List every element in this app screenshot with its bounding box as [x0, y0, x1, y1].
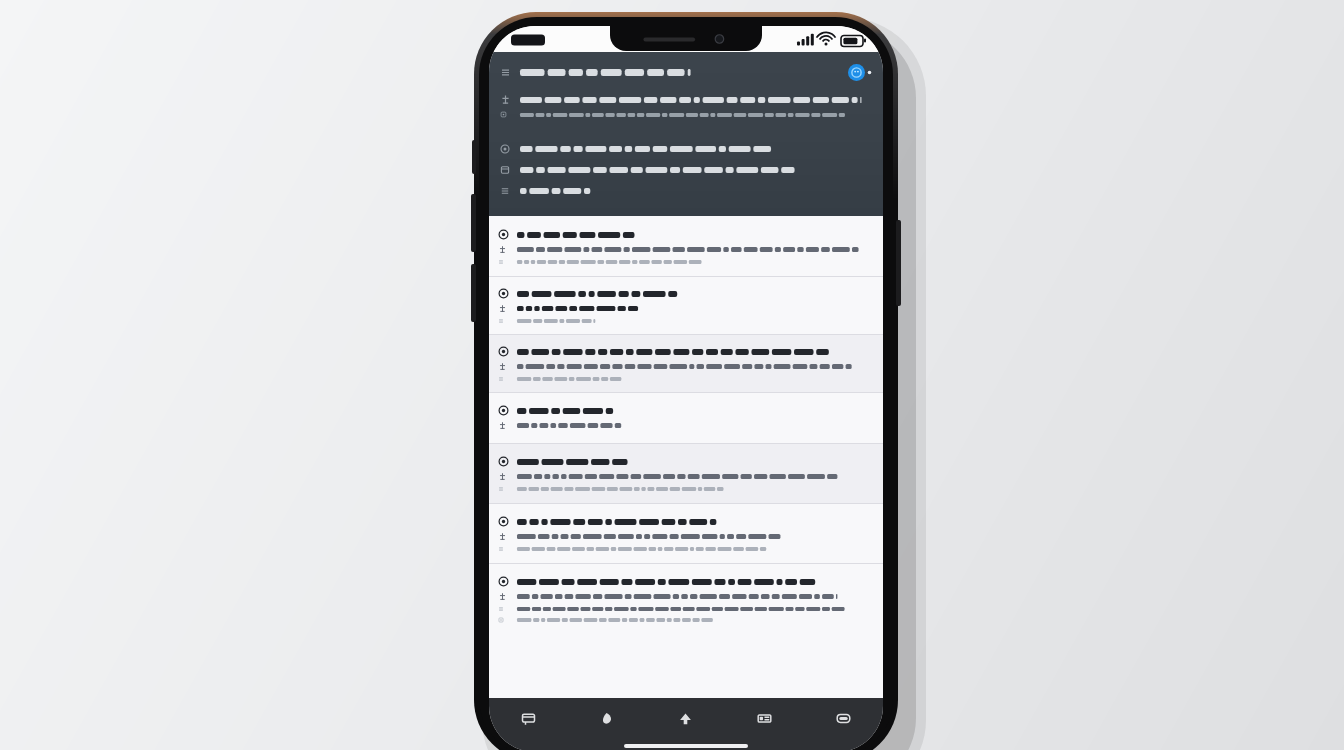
button[interactable] [500, 165, 872, 175]
button[interactable] [489, 277, 883, 334]
button[interactable]: Power [896, 220, 901, 306]
button[interactable]: Volume up [471, 194, 476, 252]
button[interactable]: Sent [646, 698, 725, 750]
button[interactable] [489, 216, 883, 276]
button[interactable] [489, 504, 883, 563]
button[interactable] [489, 335, 883, 392]
button[interactable]: Account [500, 64, 872, 81]
button[interactable] [500, 144, 872, 154]
button[interactable] [489, 444, 883, 503]
button[interactable]: Mute switch [472, 140, 476, 174]
button[interactable]: Cards [725, 698, 804, 750]
button[interactable] [500, 186, 872, 196]
button[interactable] [489, 564, 883, 631]
button[interactable]: Inbox [489, 698, 567, 750]
button[interactable] [489, 393, 883, 443]
button[interactable]: Snoozed [567, 698, 646, 750]
button[interactable]: Account [848, 64, 865, 81]
button[interactable]: Drafts [804, 698, 883, 750]
button[interactable]: Volume down [471, 264, 476, 322]
